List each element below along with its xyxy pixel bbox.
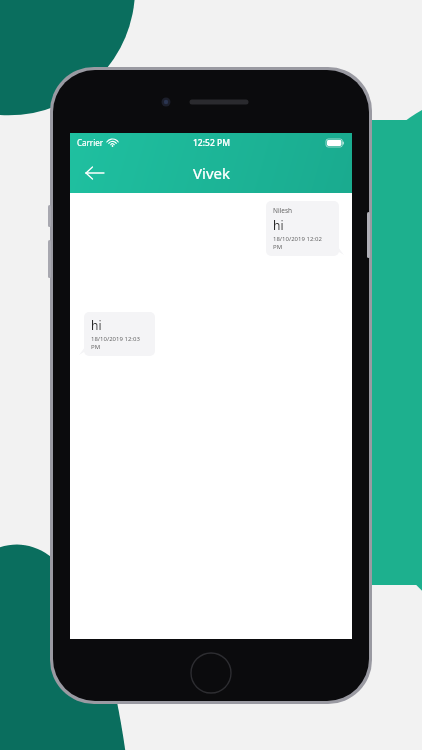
staticText: Carrier (77, 137, 104, 148)
staticText: 18/10/2019 12:02 PM (273, 235, 332, 251)
staticText: Nilesh (273, 206, 293, 215)
staticText: 18/10/2019 12:03 PM (91, 335, 148, 351)
staticText: hi (91, 317, 102, 333)
button[interactable]: Nilesh (266, 201, 344, 256)
staticText: Vivek (193, 163, 230, 183)
staticText: 12:52 PM (193, 137, 230, 149)
button[interactable]: Back (78, 156, 112, 190)
button[interactable]: hi (79, 312, 155, 356)
staticText: hi (273, 217, 284, 233)
